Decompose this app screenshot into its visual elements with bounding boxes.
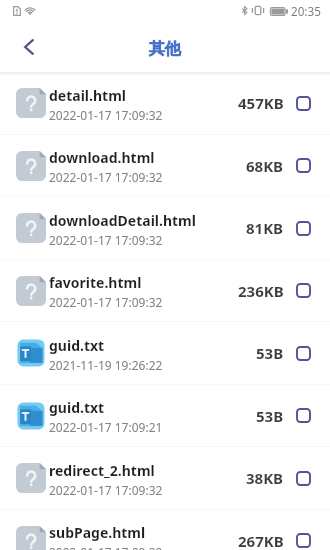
button[interactable]: Select file [296, 283, 311, 298]
staticText: subPage.html [49, 523, 146, 542]
staticText: 457KB [238, 93, 284, 113]
staticText: 2022-01-17 17:09:32 [49, 544, 163, 550]
staticText: 236KB [238, 281, 284, 301]
button[interactable]: guid.txt [0, 322, 330, 384]
button[interactable]: Select file [296, 346, 311, 361]
button[interactable]: redirect_2.html [0, 447, 330, 509]
staticText: 53B [256, 406, 284, 426]
button[interactable]: subPage.html [0, 510, 330, 550]
staticText: downloadDetail.html [49, 211, 196, 230]
button[interactable]: Back [0, 28, 48, 72]
button[interactable]: Select file [296, 408, 311, 423]
staticText: 2022-01-17 17:09:32 [49, 169, 163, 185]
button[interactable]: downloadDetail.html [0, 197, 330, 259]
button[interactable]: Select file [296, 533, 311, 548]
staticText: 2022-01-17 17:09:32 [49, 294, 163, 310]
staticText: 2021-11-19 19:26:22 [49, 357, 163, 373]
staticText: 2022-01-17 17:09:32 [49, 107, 163, 123]
staticText: 其他 [149, 39, 181, 59]
staticText: 267KB [238, 531, 284, 550]
staticText: 2022-01-17 17:09:32 [49, 232, 163, 248]
staticText: 2022-01-17 17:09:21 [49, 419, 163, 435]
staticText: 2022-01-17 17:09:32 [49, 482, 163, 498]
button[interactable]: Select file [296, 96, 311, 111]
button[interactable]: guid.txt [0, 385, 330, 446]
staticText: 81KB [246, 218, 284, 238]
staticText: download.html [49, 148, 155, 167]
button[interactable]: favorite.html [0, 260, 330, 321]
button[interactable]: download.html [0, 135, 330, 196]
staticText: guid.txt [49, 336, 105, 355]
staticText: 53B [256, 343, 284, 363]
staticText: 20:35 [291, 3, 321, 19]
staticText: 38KB [246, 468, 284, 488]
staticText: favorite.html [49, 273, 142, 292]
button[interactable]: Select file [296, 471, 311, 486]
button[interactable]: Select file [296, 158, 311, 173]
staticText: detail.html [49, 86, 126, 105]
staticText: redirect_2.html [49, 461, 155, 480]
staticText: 68KB [246, 156, 284, 176]
button[interactable]: Select file [296, 221, 311, 236]
staticText: guid.txt [49, 398, 105, 417]
button[interactable]: detail.html [0, 72, 330, 134]
